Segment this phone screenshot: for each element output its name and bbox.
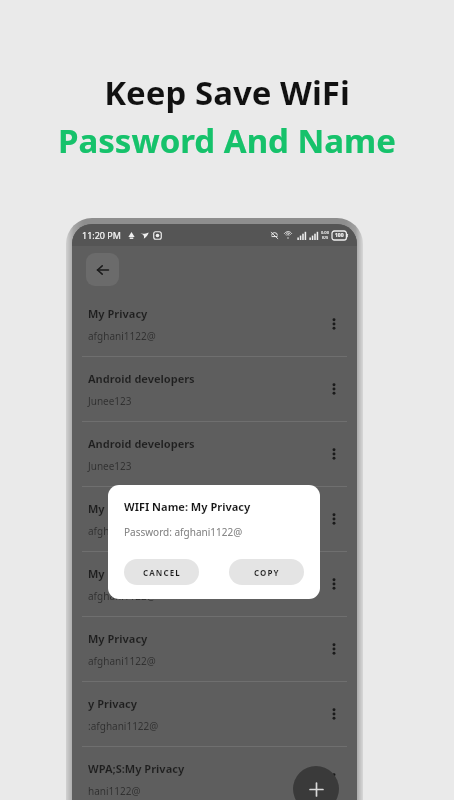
staticText: y Privacy <box>88 696 138 711</box>
staticText: hani1122@ <box>88 784 141 798</box>
button[interactable]: Android developers <box>72 357 357 421</box>
staticText: CANCEL <box>143 567 181 578</box>
button[interactable]: COPY <box>229 559 304 585</box>
staticText: afghani1122@ <box>88 329 156 343</box>
staticText: 0.00 <box>321 230 329 235</box>
staticText: :afghani1122@ <box>88 719 159 733</box>
staticText: 100 <box>335 232 344 239</box>
staticText: afghani1122@ <box>88 654 156 668</box>
staticText: My Privacy <box>88 631 148 646</box>
staticText: K/S <box>322 235 329 240</box>
staticText: COPY <box>254 567 280 578</box>
button[interactable]: y Privacy <box>72 682 357 746</box>
staticText: Keep Save WiFi <box>104 70 350 115</box>
button[interactable]: More options <box>321 571 347 597</box>
button[interactable]: My Privacy <box>72 552 357 616</box>
button[interactable]: Add network <box>293 766 339 800</box>
button[interactable]: My Privacy <box>72 617 357 681</box>
button[interactable]: CANCEL <box>124 559 199 585</box>
button[interactable]: WPA;S:My Privacy <box>72 747 357 800</box>
staticText: My Privacy <box>88 566 148 581</box>
button[interactable]: More options <box>321 636 347 662</box>
staticText: Password: afghani1122@ <box>124 525 243 539</box>
button[interactable]: More options <box>321 376 347 402</box>
staticText: afghani1122@ <box>88 524 156 538</box>
staticText: 11:20 PM <box>82 229 121 241</box>
button[interactable]: Android developers <box>72 422 357 486</box>
button[interactable]: My Privacy <box>72 292 357 356</box>
staticText: Junee123 <box>88 459 132 473</box>
staticText: WPA;S:My Privacy <box>88 761 185 776</box>
staticText: Android developers <box>88 371 195 386</box>
staticText: WIFI Name: My Privacy <box>124 499 251 514</box>
staticText: Android developers <box>88 436 195 451</box>
button[interactable]: My Privacy <box>72 487 357 551</box>
button[interactable]: More options <box>321 766 347 792</box>
staticText: My Privacy <box>88 306 148 321</box>
button[interactable]: More options <box>321 701 347 727</box>
staticText: afghani1122@ <box>88 589 156 603</box>
staticText: Password And Name <box>58 118 396 163</box>
button[interactable]: More options <box>321 311 347 337</box>
button[interactable]: More options <box>321 506 347 532</box>
button[interactable]: Back <box>86 253 119 286</box>
staticText: My Privacy <box>88 501 148 516</box>
button[interactable]: More options <box>321 441 347 467</box>
staticText: Junee123 <box>88 394 132 408</box>
